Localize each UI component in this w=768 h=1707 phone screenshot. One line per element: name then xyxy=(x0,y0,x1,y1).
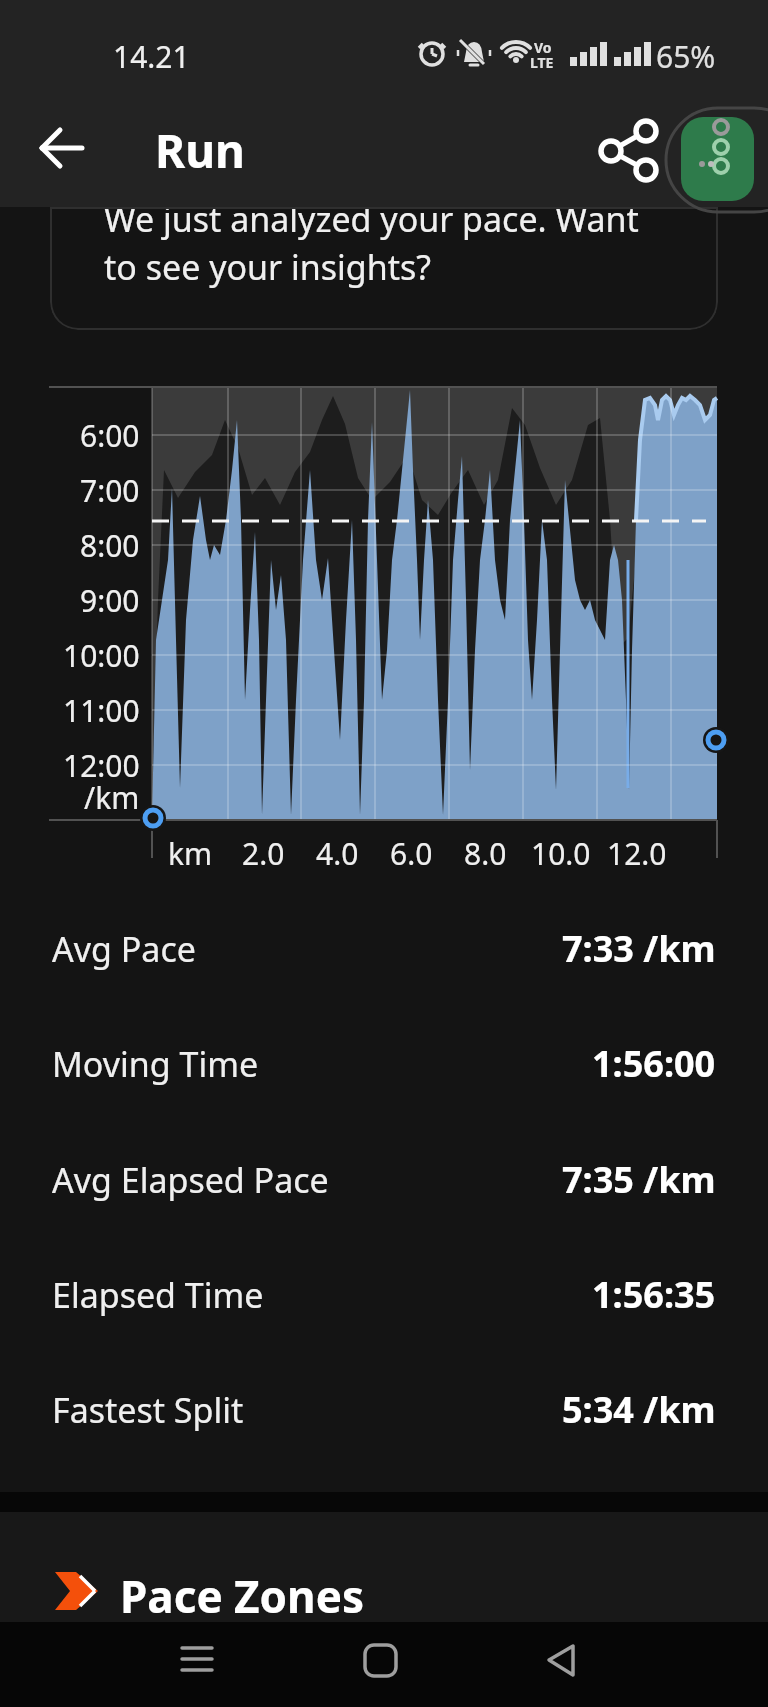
staticText: to see your insights? xyxy=(104,244,432,290)
button[interactable]: Moving Time xyxy=(0,1023,768,1103)
staticText: We just analyzed your pace. Want xyxy=(104,207,639,242)
staticText: 12.0 xyxy=(607,833,667,874)
staticText: /km xyxy=(84,777,140,818)
staticText: 6:00 xyxy=(80,415,140,456)
staticText: 4.0 xyxy=(316,833,359,874)
staticText: Avg Pace xyxy=(52,926,196,972)
staticText: 10.0 xyxy=(531,833,591,874)
staticText: 8.0 xyxy=(464,833,507,874)
staticText: Elapsed Time xyxy=(52,1272,264,1318)
staticText: 8:00 xyxy=(80,525,140,566)
button[interactable]: Pace Zones xyxy=(0,1550,768,1622)
staticText: 2.0 xyxy=(242,833,285,874)
button[interactable]: Avg Pace xyxy=(0,908,768,988)
staticText: Vo xyxy=(534,38,552,57)
staticText: Pace Zones xyxy=(120,1566,365,1626)
staticText: 7:00 xyxy=(80,470,140,511)
button[interactable] xyxy=(340,1630,420,1692)
staticText: 1:56:35 xyxy=(592,1270,716,1319)
staticText: Avg Elapsed Pace xyxy=(52,1157,329,1203)
staticText: 11:00 xyxy=(63,690,140,731)
staticText: Run xyxy=(155,119,245,182)
button[interactable] xyxy=(668,104,768,214)
staticText: LTE xyxy=(530,53,554,72)
staticText: 65% xyxy=(656,36,716,77)
staticText: 6.0 xyxy=(390,833,433,874)
staticText: 7:35 /km xyxy=(562,1155,716,1204)
button[interactable] xyxy=(523,1630,603,1692)
button[interactable] xyxy=(600,118,664,178)
button[interactable]: Elapsed Time xyxy=(0,1254,768,1334)
button[interactable]: Avg Elapsed Pace xyxy=(0,1139,768,1219)
staticText: 14.21 xyxy=(113,36,190,77)
staticText: 10:00 xyxy=(63,635,140,676)
staticText: 9:00 xyxy=(80,580,140,621)
staticText: 5:34 /km xyxy=(562,1385,716,1434)
staticText: 1:56:00 xyxy=(592,1039,716,1088)
button[interactable] xyxy=(157,1630,237,1692)
staticText: km xyxy=(168,833,213,874)
button[interactable]: Fastest Split xyxy=(0,1369,768,1449)
button[interactable] xyxy=(30,118,94,178)
staticText: 7:33 /km xyxy=(562,924,716,973)
button[interactable]: We just analyzed your pace. Want xyxy=(50,207,718,330)
staticText: Moving Time xyxy=(52,1041,259,1087)
staticText: 12:00 xyxy=(63,745,140,786)
staticText: Fastest Split xyxy=(52,1387,244,1433)
